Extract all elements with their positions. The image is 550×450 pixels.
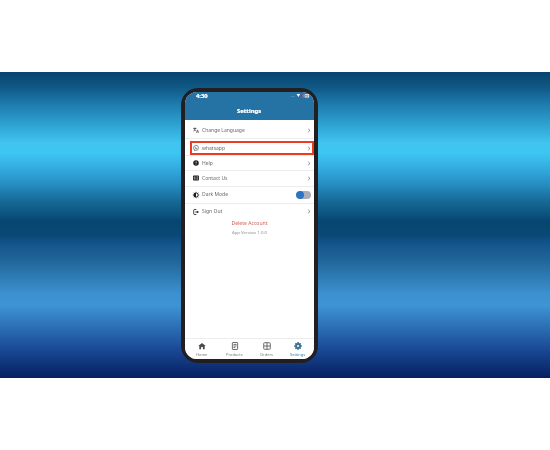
button[interactable]: Sign Out <box>185 203 314 220</box>
staticText: Change Language <box>202 127 245 134</box>
staticText: whatsapp <box>202 145 225 152</box>
staticText: Settings <box>290 352 306 357</box>
staticText: Products <box>226 352 243 357</box>
staticText: Home <box>196 352 208 357</box>
button[interactable]: Home <box>192 342 212 357</box>
staticText: Sign Out <box>202 208 223 215</box>
button[interactable]: Settings <box>286 342 310 357</box>
button[interactable]: Help <box>185 156 314 170</box>
button[interactable]: Orders <box>256 342 277 357</box>
other: Status <box>290 93 308 99</box>
button[interactable]: Change Language <box>185 122 314 138</box>
staticText: 4:30 <box>196 92 208 100</box>
staticText: Settings <box>237 107 262 115</box>
staticText: Orders <box>260 352 273 357</box>
button[interactable]: Contact Us <box>185 170 314 186</box>
button[interactable]: whatsapp <box>185 141 314 155</box>
staticText: Help <box>202 160 213 167</box>
staticText: App Version 1.0.0 <box>185 229 314 235</box>
button[interactable]: Products <box>222 342 247 357</box>
staticText: Contact Us <box>202 175 228 182</box>
staticText: Dark Mode <box>202 191 228 198</box>
button[interactable]: Dark Mode <box>185 186 314 203</box>
button[interactable]: Delete Account <box>185 220 314 227</box>
